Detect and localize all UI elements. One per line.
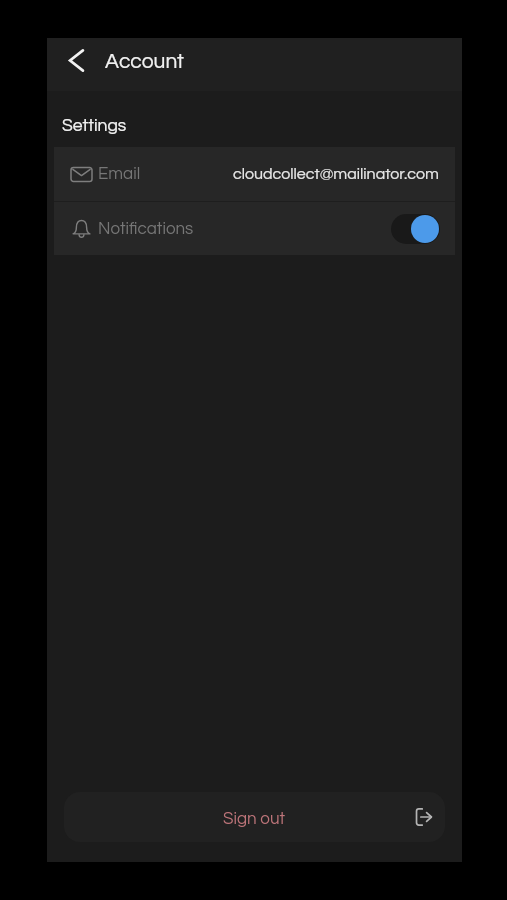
button[interactable]: Notifications bbox=[54, 202, 455, 255]
button[interactable]: Email bbox=[54, 147, 455, 201]
staticText: Notifications bbox=[98, 220, 194, 238]
other: Sign out bbox=[64, 792, 432, 842]
staticText: Settings bbox=[62, 117, 127, 135]
button[interactable]: Back bbox=[59, 43, 93, 77]
button[interactable]: Notifications toggle bbox=[391, 214, 440, 244]
staticText: Account bbox=[105, 51, 184, 73]
staticText: cloudcollect@mailinator.com bbox=[233, 166, 439, 182]
staticText: Email bbox=[98, 165, 141, 183]
button[interactable]: Sign out bbox=[64, 792, 445, 842]
staticText: Sign out bbox=[223, 810, 286, 828]
